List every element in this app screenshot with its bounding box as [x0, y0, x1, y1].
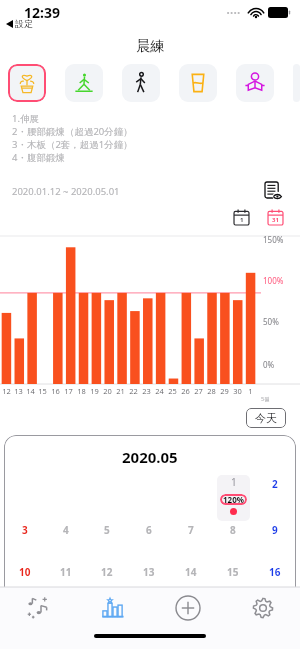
staticText: 50%: [263, 316, 279, 327]
staticText: 1.伸展: [12, 112, 39, 125]
button[interactable]: Activity: [179, 64, 217, 102]
staticText: 5월: [261, 395, 270, 402]
staticText: 2020.01.12 ~ 2020.05.01: [12, 185, 120, 198]
button[interactable]: Activity: [65, 64, 103, 102]
staticText: 2: [272, 477, 278, 491]
staticText: 16: [51, 386, 60, 396]
button[interactable]: 10: [4, 563, 45, 603]
button[interactable]: Settings: [225, 588, 300, 628]
staticText: 11: [60, 565, 72, 579]
staticText: 13: [143, 565, 155, 579]
staticText: 120%: [223, 494, 244, 505]
staticText: 3: [22, 523, 28, 537]
staticText: 27: [194, 386, 203, 396]
staticText: 13: [14, 386, 23, 396]
button[interactable]: 2: [254, 475, 296, 521]
staticText: 設定: [15, 18, 33, 29]
button[interactable]: 1: [217, 475, 250, 521]
staticText: 2・腰部鍛煉（超過20分鐘）: [12, 125, 133, 138]
button[interactable]: 15: [212, 563, 254, 603]
staticText: 28: [207, 386, 216, 396]
staticText: 晨練: [136, 38, 164, 56]
button[interactable]: 4: [45, 521, 86, 563]
button[interactable]: 16: [254, 563, 296, 603]
staticText: 3・木板（2套，超過1分鐘）: [12, 138, 133, 151]
staticText: 12: [2, 386, 11, 396]
button[interactable]: 14: [170, 563, 212, 603]
button[interactable]: 9: [254, 521, 296, 563]
staticText: 25: [168, 386, 177, 396]
staticText: 30: [233, 386, 242, 396]
button[interactable]: Music tasks: [0, 588, 75, 628]
staticText: 5: [104, 523, 110, 537]
staticText: 1: [231, 475, 237, 489]
staticText: 14: [26, 386, 35, 396]
staticText: 1: [248, 386, 253, 396]
staticText: 16: [269, 565, 281, 579]
button[interactable]: 8: [212, 521, 254, 563]
button[interactable]: 13: [128, 563, 170, 603]
staticText: 22: [129, 386, 138, 396]
staticText: 10: [19, 565, 31, 579]
staticText: 15: [38, 386, 47, 396]
staticText: 15: [227, 565, 239, 579]
staticText: 0%: [263, 359, 275, 370]
staticText: 23: [142, 386, 151, 396]
staticText: 100%: [263, 275, 284, 286]
button[interactable]: Activity: [8, 64, 46, 102]
staticText: 1: [240, 216, 244, 224]
button[interactable]: Activity: [122, 64, 160, 102]
staticText: 12:39: [24, 3, 60, 22]
staticText: 14: [185, 565, 197, 579]
staticText: 4: [63, 523, 69, 537]
staticText: 150%: [263, 234, 284, 245]
staticText: 12: [101, 565, 113, 579]
button[interactable]: 12: [86, 563, 128, 603]
staticText: 24: [155, 386, 164, 396]
staticText: 21: [116, 386, 125, 396]
button[interactable]: 今天: [246, 408, 286, 428]
button[interactable]: Day view: [230, 206, 252, 228]
staticText: 9: [272, 523, 278, 537]
staticText: 4・腹部鍛煉: [12, 151, 65, 164]
button[interactable]: Activity: [236, 64, 274, 102]
staticText: 29: [220, 386, 229, 396]
button[interactable]: 7: [170, 521, 212, 563]
staticText: 18: [77, 386, 86, 396]
button[interactable]: 3: [4, 521, 45, 563]
button[interactable]: Statistics: [75, 588, 150, 628]
staticText: 2020.05: [122, 447, 178, 467]
staticText: 26: [181, 386, 190, 396]
button[interactable]: 11: [45, 563, 86, 603]
button[interactable]: Month view: [264, 206, 286, 228]
button[interactable]: View report: [260, 178, 286, 204]
staticText: 8: [230, 523, 236, 537]
staticText: 今天: [255, 411, 277, 425]
button[interactable]: 5: [86, 521, 128, 563]
staticText: 6: [146, 523, 152, 537]
staticText: 19: [90, 386, 99, 396]
button[interactable]: Add: [150, 588, 225, 628]
button[interactable]: Back to 設定: [6, 18, 33, 29]
staticText: 17: [64, 386, 73, 396]
staticText: 7: [188, 523, 194, 537]
staticText: 20: [103, 386, 112, 396]
staticText: 31: [272, 216, 279, 224]
button[interactable]: 6: [128, 521, 170, 563]
